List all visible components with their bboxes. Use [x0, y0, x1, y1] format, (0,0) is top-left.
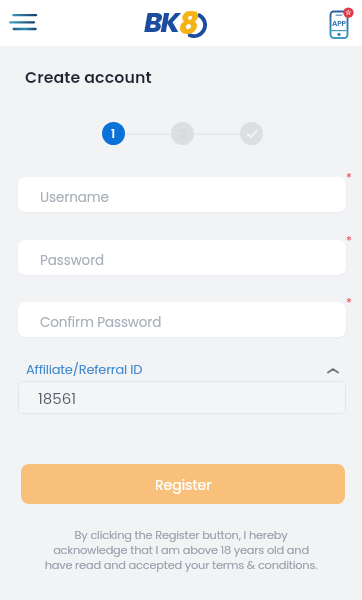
staticText: Password — [40, 251, 105, 270]
staticText: 1 — [111, 125, 116, 142]
staticText: APP — [332, 18, 346, 28]
button[interactable]: Step 3 — [240, 122, 263, 145]
staticText: Create account — [25, 66, 152, 88]
staticText: Register — [155, 475, 212, 495]
staticText: 18561 — [38, 388, 77, 409]
button[interactable]: Password — [18, 240, 346, 275]
button[interactable]: 18561 — [18, 381, 346, 414]
staticText: * — [346, 169, 352, 186]
staticText: Confirm Password — [40, 313, 162, 332]
staticText: * — [346, 294, 352, 311]
button[interactable]: Confirm Password — [18, 302, 346, 337]
staticText: By clicking the Register button, I hereb… — [40, 527, 322, 573]
staticText: 8 — [179, 3, 199, 45]
button[interactable]: Step 2 — [171, 122, 194, 145]
staticText: BK — [144, 4, 179, 42]
button[interactable]: Download App — [330, 4, 362, 44]
button[interactable]: Step 1 — [102, 122, 125, 145]
button[interactable]: Menu — [0, 0, 46, 46]
button[interactable]: Affiliate/Referral ID — [26, 358, 344, 380]
staticText: * — [346, 232, 352, 249]
button[interactable]: Register — [21, 464, 345, 504]
staticText: Affiliate/Referral ID — [26, 360, 143, 378]
staticText: Username — [40, 188, 109, 207]
button[interactable]: Username — [18, 177, 346, 212]
